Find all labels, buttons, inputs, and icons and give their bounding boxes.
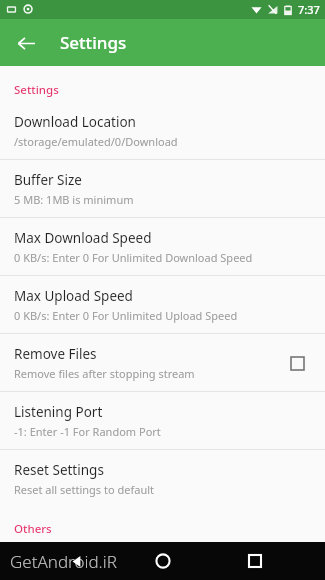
staticText: 0 KB/s: Enter 0 For Unlimited Download S… [14,250,253,265]
staticText: Reset Settings [14,461,104,479]
button[interactable]: Listening Port [0,392,325,449]
button[interactable]: Back [58,542,96,580]
staticText: Remove files after stopping stream [14,366,195,381]
button[interactable]: Remove Files checkbox [283,349,311,377]
staticText: -1: Enter -1 For Random Port [14,424,161,439]
button[interactable]: Download Location [0,102,325,159]
staticText: Others [14,521,52,537]
button[interactable]: Back [8,25,44,61]
staticText: GetAndroid.iR [10,550,117,573]
staticText: /storage/emulated/0/Download [14,134,178,149]
staticText: Remove Files [14,345,97,363]
staticText: 5 MB: 1MB is minimum [14,192,134,207]
button[interactable]: Recent apps [236,542,274,580]
staticText: Max Download Speed [14,229,152,247]
staticText: 0 KB/s: Enter 0 For Unlimited Upload Spe… [14,308,238,323]
button[interactable]: Max Upload Speed [0,276,325,333]
staticText: Settings [60,31,127,54]
staticText: Buffer Size [14,171,82,189]
button[interactable]: Remove Files [0,334,325,391]
staticText: Reset all settings to default [14,482,155,497]
staticText: Max Upload Speed [14,287,133,305]
button[interactable]: Reset Settings [0,450,325,507]
button[interactable]: Buffer Size [0,160,325,217]
staticText: Listening Port [14,403,103,421]
staticText: 7:37 [298,2,320,17]
staticText: Download Location [14,113,136,131]
button[interactable]: Home [144,542,182,580]
staticText: Settings [14,82,59,98]
button[interactable]: Max Download Speed [0,218,325,275]
